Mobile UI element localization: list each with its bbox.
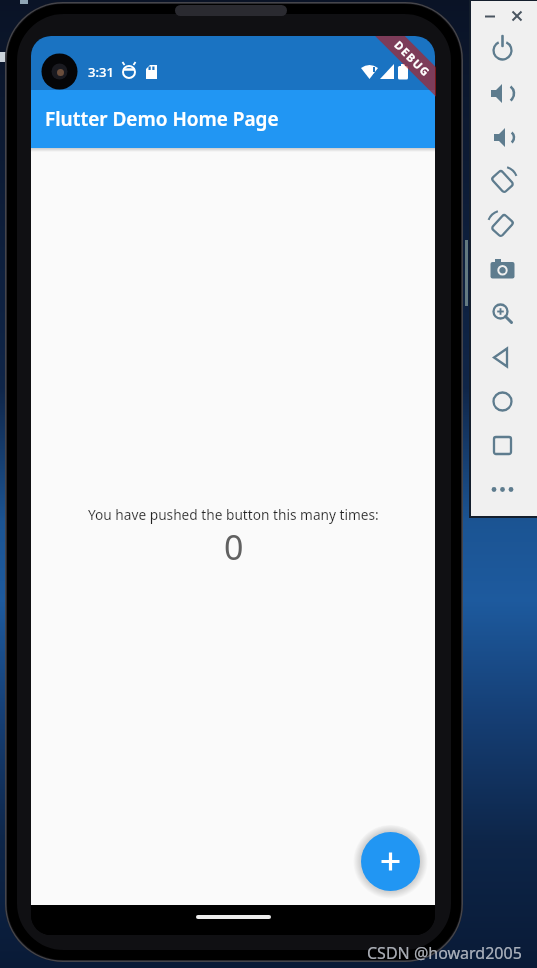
staticText: 3:31 [88, 63, 114, 81]
staticText: CSDN @howard2005 [367, 942, 522, 964]
button[interactable] [484, 163, 521, 200]
button[interactable] [484, 207, 521, 244]
staticText: Flutter Demo Home Page [45, 106, 279, 132]
button[interactable] [484, 31, 521, 68]
button[interactable] [484, 339, 521, 376]
staticText: 0 [224, 524, 244, 570]
staticText: DEBUG [391, 37, 434, 80]
button[interactable] [484, 471, 521, 508]
button[interactable] [361, 832, 420, 891]
button[interactable] [507, 6, 527, 26]
staticText: You have pushed the button this many tim… [88, 505, 379, 524]
button[interactable] [484, 295, 521, 332]
button[interactable] [480, 6, 500, 26]
button[interactable] [484, 383, 521, 420]
button[interactable] [484, 119, 521, 156]
button[interactable] [484, 251, 521, 288]
button[interactable] [484, 427, 521, 464]
button[interactable] [484, 75, 521, 112]
